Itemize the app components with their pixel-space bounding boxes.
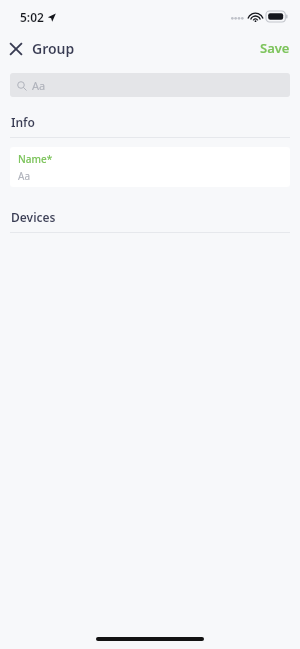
staticText: Aa: [32, 78, 46, 93]
staticText: Devices: [11, 209, 56, 225]
staticText: 5:02: [20, 9, 44, 25]
button[interactable]: Name*: [10, 147, 290, 187]
button[interactable]: Close: [0, 36, 83, 61]
button[interactable]: Save: [250, 35, 300, 61]
staticText: Aa: [18, 169, 30, 183]
staticText: Group: [32, 39, 75, 58]
button[interactable]: Aa: [10, 73, 290, 97]
staticText: Save: [260, 39, 290, 57]
staticText: Info: [11, 114, 35, 130]
other: Close: [8, 41, 24, 57]
staticText: Name*: [18, 152, 53, 166]
